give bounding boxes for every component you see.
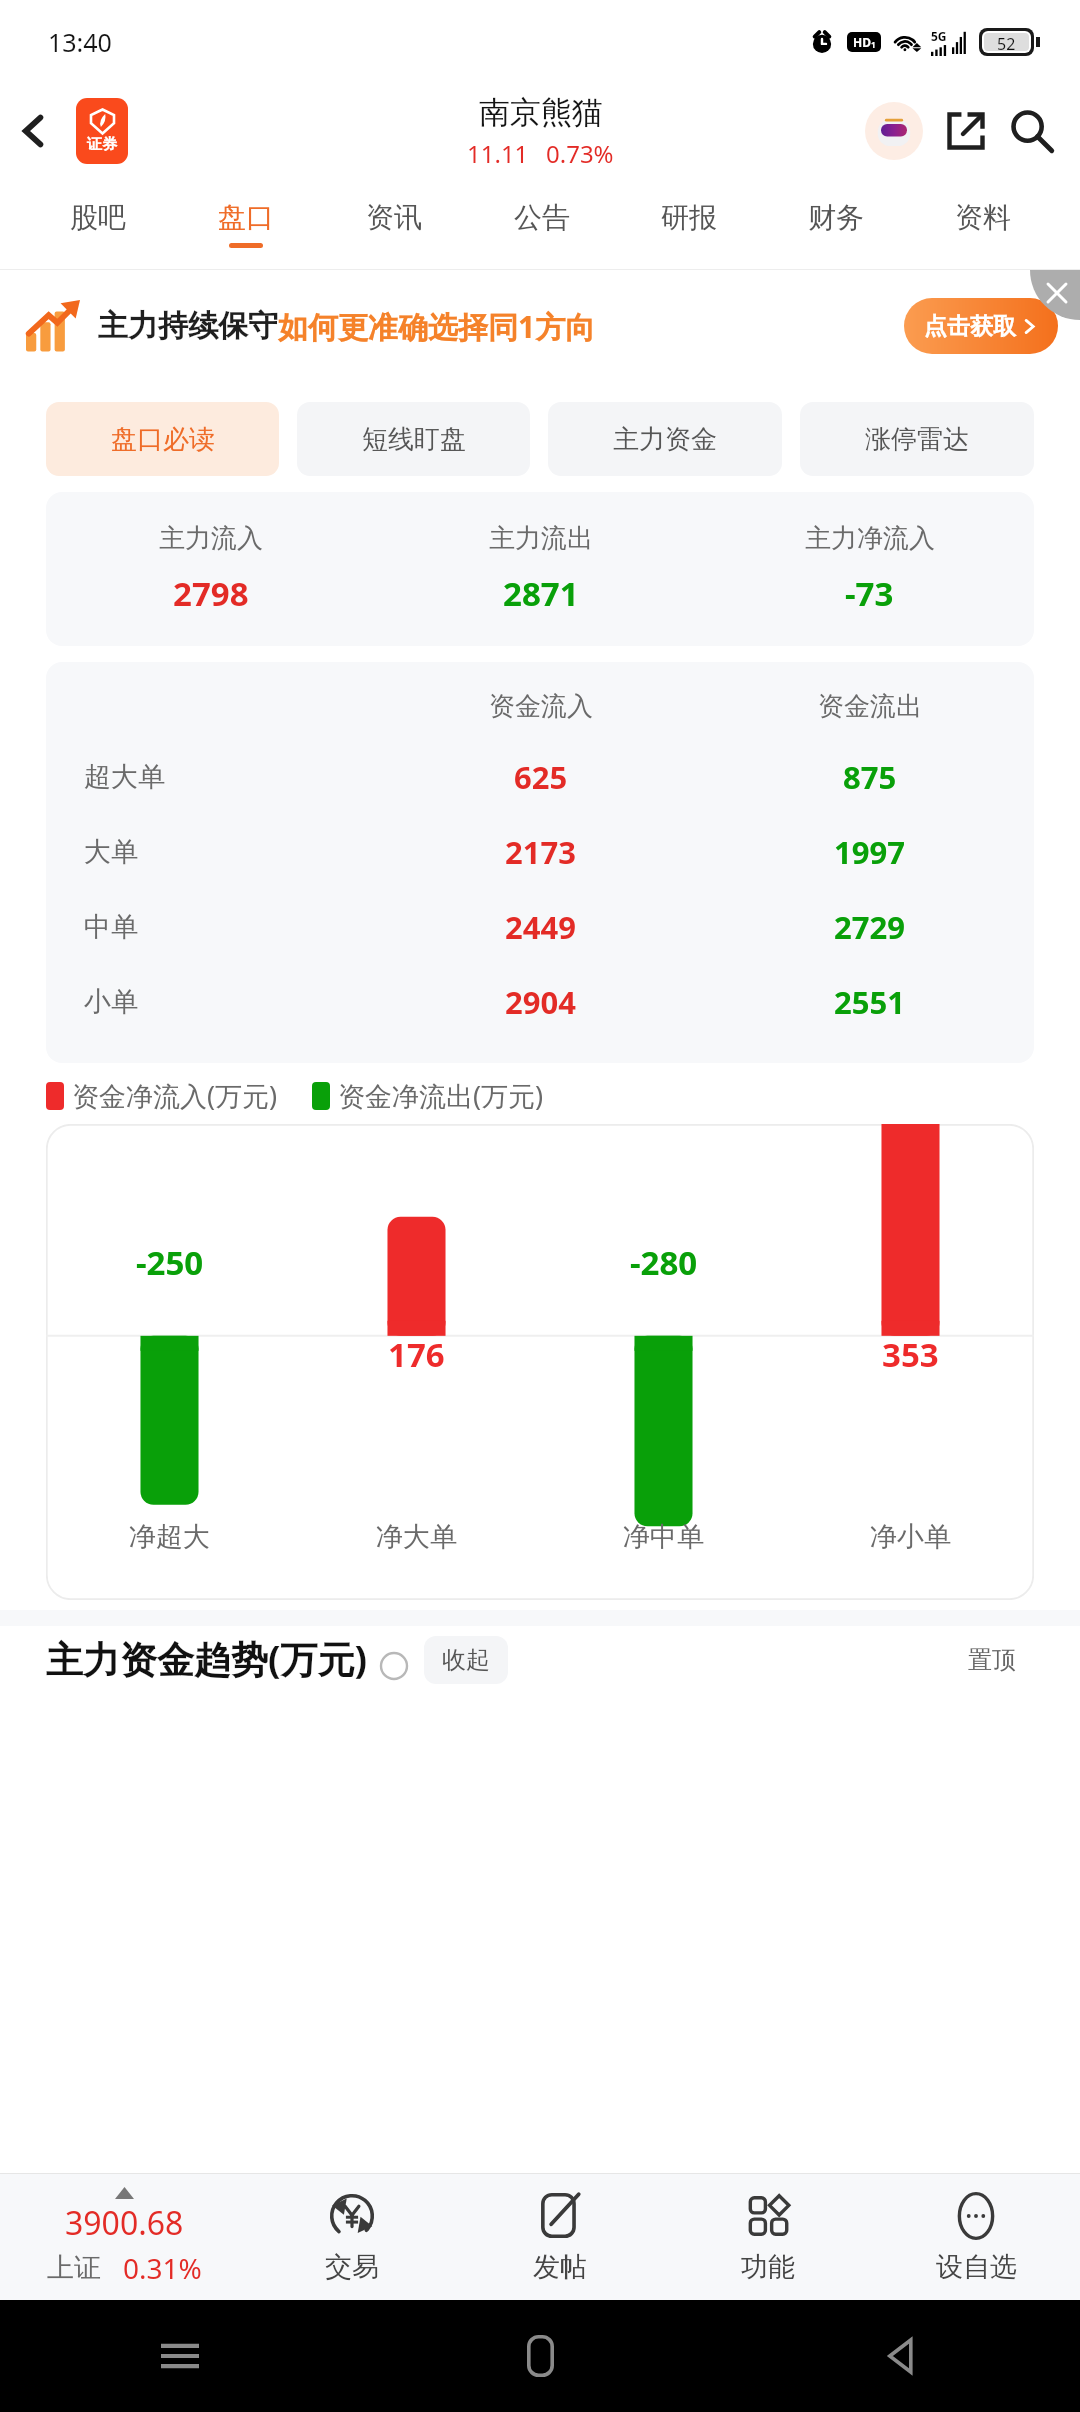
staticText: 发帖 bbox=[533, 2250, 587, 2284]
button[interactable]: 资料 bbox=[909, 179, 1056, 269]
staticText: 2871 bbox=[503, 571, 579, 616]
button[interactable]: AI assistant bbox=[862, 99, 926, 163]
staticText: 1 bbox=[871, 39, 876, 50]
staticText: 股吧 bbox=[70, 200, 126, 235]
staticText: 2449 bbox=[505, 906, 576, 948]
staticText: -250 bbox=[136, 1240, 204, 1285]
button[interactable]: 资讯 bbox=[320, 179, 468, 269]
staticText: 研报 bbox=[661, 200, 717, 235]
staticText: 中单 bbox=[84, 910, 138, 944]
button[interactable]: Home bbox=[360, 2300, 720, 2412]
button[interactable]: 设自选 bbox=[872, 2174, 1080, 2300]
staticText: 置顶 bbox=[968, 1645, 1016, 1675]
staticText: 南京熊猫 bbox=[479, 93, 603, 132]
staticText: 2904 bbox=[505, 981, 576, 1023]
staticText: 资金流入 bbox=[489, 690, 593, 723]
staticText: 净小单 bbox=[870, 1520, 951, 1554]
staticText: 0.31% bbox=[123, 2249, 202, 2287]
staticText: 净中单 bbox=[623, 1520, 704, 1554]
staticText: 主力流入 bbox=[159, 522, 263, 555]
staticText: 设自选 bbox=[936, 2250, 1017, 2284]
button[interactable]: 短线盯盘 bbox=[297, 402, 530, 476]
staticText: 盘口必读 bbox=[111, 423, 215, 456]
staticText: 2173 bbox=[505, 831, 576, 873]
staticText: -280 bbox=[630, 1240, 698, 1285]
staticText: 资料 bbox=[955, 200, 1011, 235]
staticText: 5G bbox=[931, 28, 947, 44]
staticText: 公告 bbox=[514, 200, 570, 235]
staticText: -73 bbox=[845, 571, 894, 616]
staticText: 上证 bbox=[47, 2251, 101, 2285]
button[interactable]: 研报 bbox=[615, 179, 762, 269]
button[interactable]: 收起 bbox=[424, 1636, 508, 1684]
staticText: 资金流出 bbox=[818, 690, 922, 723]
staticText: 13:40 bbox=[48, 25, 112, 59]
staticText: 小单 bbox=[84, 985, 138, 1019]
staticText: 收起 bbox=[442, 1645, 490, 1675]
button[interactable]: 公告 bbox=[468, 179, 615, 269]
button[interactable]: 主力资金 bbox=[548, 402, 782, 476]
button[interactable]: Close ad bbox=[1030, 270, 1080, 320]
button[interactable]: Back bbox=[4, 101, 64, 161]
staticText: 1997 bbox=[834, 831, 905, 873]
staticText: 超大单 bbox=[84, 760, 165, 794]
button[interactable]: 功能 bbox=[664, 2174, 872, 2300]
staticText: 功能 bbox=[741, 2250, 795, 2284]
staticText: 2551 bbox=[834, 981, 905, 1023]
button[interactable]: Recents bbox=[0, 2300, 360, 2412]
button[interactable]: 置顶 bbox=[950, 1636, 1034, 1684]
staticText: 盘口 bbox=[218, 200, 274, 235]
staticText: 11.11 bbox=[467, 137, 529, 170]
button[interactable]: 主力流入 bbox=[46, 492, 1034, 646]
button[interactable]: 发帖 bbox=[456, 2174, 664, 2300]
staticText: 主力资金 bbox=[613, 423, 717, 456]
button[interactable]: 3900.68 bbox=[0, 2174, 248, 2300]
staticText: HD bbox=[853, 34, 871, 50]
button[interactable]: Back bbox=[720, 2300, 1080, 2412]
button[interactable]: 证券 bbox=[76, 98, 128, 164]
button[interactable]: 财务 bbox=[762, 179, 909, 269]
staticText: 净大单 bbox=[376, 1520, 457, 1554]
staticText: 资金净流出(万元) bbox=[338, 1077, 544, 1114]
staticText: 2729 bbox=[834, 906, 905, 948]
staticText: 主力流出 bbox=[489, 522, 593, 555]
staticText: 涨停雷达 bbox=[865, 423, 969, 456]
staticText: 大单 bbox=[84, 835, 138, 869]
button[interactable]: 点击获取 bbox=[904, 298, 1058, 354]
staticText: 资金净流入(万元) bbox=[72, 1077, 278, 1114]
button[interactable]: 股吧 bbox=[24, 179, 172, 269]
staticText: 875 bbox=[843, 756, 897, 798]
button[interactable]: 涨停雷达 bbox=[800, 402, 1034, 476]
staticText: 如何更准确选择同1方向 bbox=[278, 306, 596, 347]
staticText: 净超大 bbox=[129, 1520, 210, 1554]
staticText: 52 bbox=[997, 33, 1016, 51]
staticText: 证券 bbox=[87, 135, 117, 154]
button[interactable]: Search bbox=[1000, 99, 1064, 163]
staticText: 176 bbox=[388, 1332, 445, 1377]
button[interactable]: 盘口 bbox=[172, 179, 320, 269]
staticText: 353 bbox=[882, 1332, 939, 1377]
staticText: 0.73% bbox=[546, 137, 614, 170]
staticText: 主力净流入 bbox=[805, 522, 935, 555]
staticText: 财务 bbox=[808, 200, 864, 235]
button[interactable]: -250 bbox=[46, 1124, 1034, 1600]
staticText: 主力持续保守 bbox=[98, 307, 278, 345]
staticText: 2798 bbox=[173, 571, 249, 616]
staticText: 3900.68 bbox=[65, 2201, 184, 2245]
button[interactable]: 资金流入 bbox=[46, 662, 1034, 1063]
button[interactable]: 盘口必读 bbox=[46, 402, 279, 476]
staticText: 短线盯盘 bbox=[362, 423, 466, 456]
staticText: 主力资金趋势(万元) bbox=[46, 1633, 368, 1684]
staticText: 点击获取 bbox=[924, 312, 1016, 341]
staticText: 交易 bbox=[325, 2250, 379, 2284]
button[interactable]: Share bbox=[934, 99, 998, 163]
staticText: 资讯 bbox=[366, 200, 422, 235]
staticText: 625 bbox=[514, 756, 568, 798]
button[interactable]: 交易 bbox=[248, 2174, 456, 2300]
